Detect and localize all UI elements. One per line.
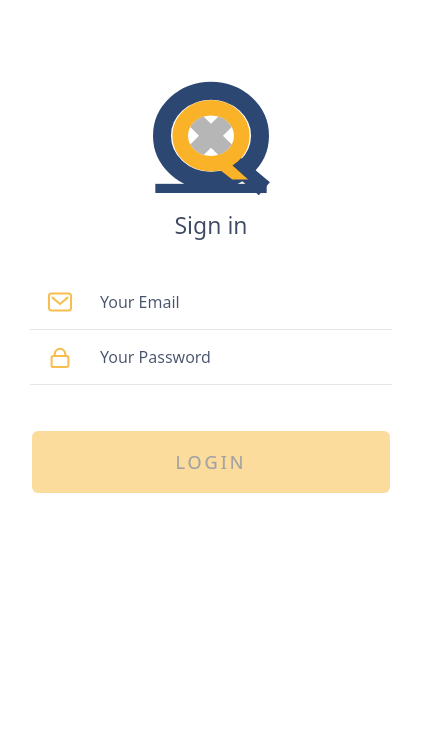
other: Email [48,290,72,314]
other: Password [48,345,72,369]
staticText: LOGIN [175,450,247,475]
staticText: Your Password [100,346,211,368]
button[interactable]: Password [0,330,422,384]
button[interactable]: Email [0,275,422,329]
button[interactable]: LOGIN [32,431,390,493]
staticText: Your Email [100,291,180,313]
staticText: Sign in [174,209,248,240]
